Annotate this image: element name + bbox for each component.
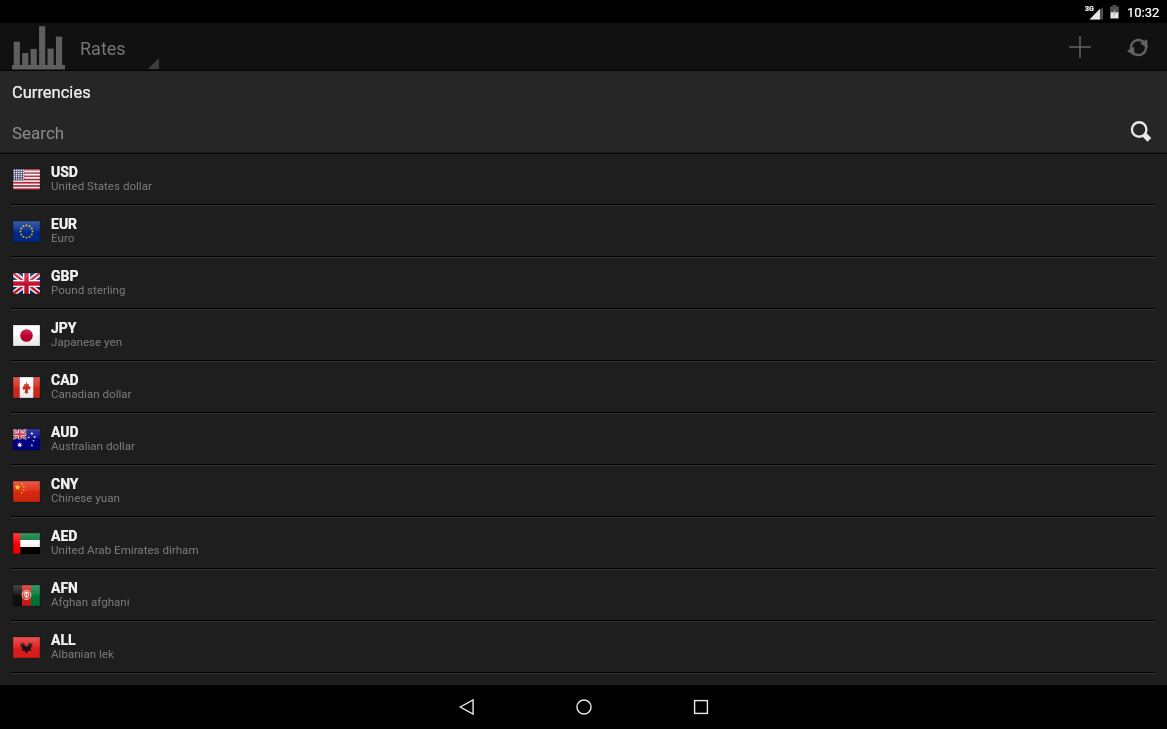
staticText: 10:32 — [1127, 5, 1160, 20]
button[interactable]: AED — [0, 518, 1167, 570]
button[interactable]: CNY — [0, 466, 1167, 518]
staticText: AUD — [51, 424, 79, 440]
staticText: Chinese yuan — [51, 491, 120, 505]
button[interactable]: Search — [0, 111, 1167, 152]
button[interactable]: USD — [0, 154, 1167, 206]
button[interactable]: Add — [1051, 23, 1109, 71]
button[interactable]: CAD — [0, 362, 1167, 414]
staticText: AFN — [51, 580, 78, 596]
staticText: Canadian dollar — [51, 387, 132, 401]
button[interactable]: EUR — [0, 206, 1167, 258]
staticText: Japanese yen — [51, 335, 123, 349]
staticText: Afghan afghani — [51, 595, 130, 609]
staticText: Euro — [51, 231, 75, 245]
button[interactable]: AFN — [0, 570, 1167, 622]
staticText: CAD — [51, 372, 79, 388]
staticText: Pound sterling — [51, 283, 126, 297]
staticText: USD — [51, 164, 78, 180]
button[interactable]: Search — [1122, 112, 1162, 152]
staticText: AED — [51, 528, 78, 544]
staticText: Rates — [80, 38, 126, 59]
button[interactable]: Recents — [642, 685, 759, 729]
button[interactable]: Home — [525, 685, 642, 729]
staticText: Search — [12, 123, 65, 143]
staticText: GBP — [51, 268, 79, 284]
staticText: United Arab Emirates dirham — [51, 543, 199, 557]
staticText: EUR — [51, 216, 78, 232]
button[interactable]: JPY — [0, 310, 1167, 362]
button[interactable]: AUD — [0, 414, 1167, 466]
staticText: CNY — [51, 476, 79, 492]
staticText: 3G — [1085, 5, 1094, 13]
button[interactable]: ALL — [0, 622, 1167, 674]
staticText: JPY — [51, 320, 77, 336]
button[interactable]: Rates, open navigation — [0, 23, 159, 71]
button[interactable]: Refresh — [1109, 23, 1167, 71]
staticText: United States dollar — [51, 179, 152, 193]
staticText: Currencies — [12, 83, 91, 102]
staticText: ALL — [51, 632, 76, 648]
button[interactable]: GBP — [0, 258, 1167, 310]
staticText: Albanian lek — [51, 647, 114, 661]
staticText: Australian dollar — [51, 439, 135, 453]
button[interactable]: Back — [408, 685, 525, 729]
